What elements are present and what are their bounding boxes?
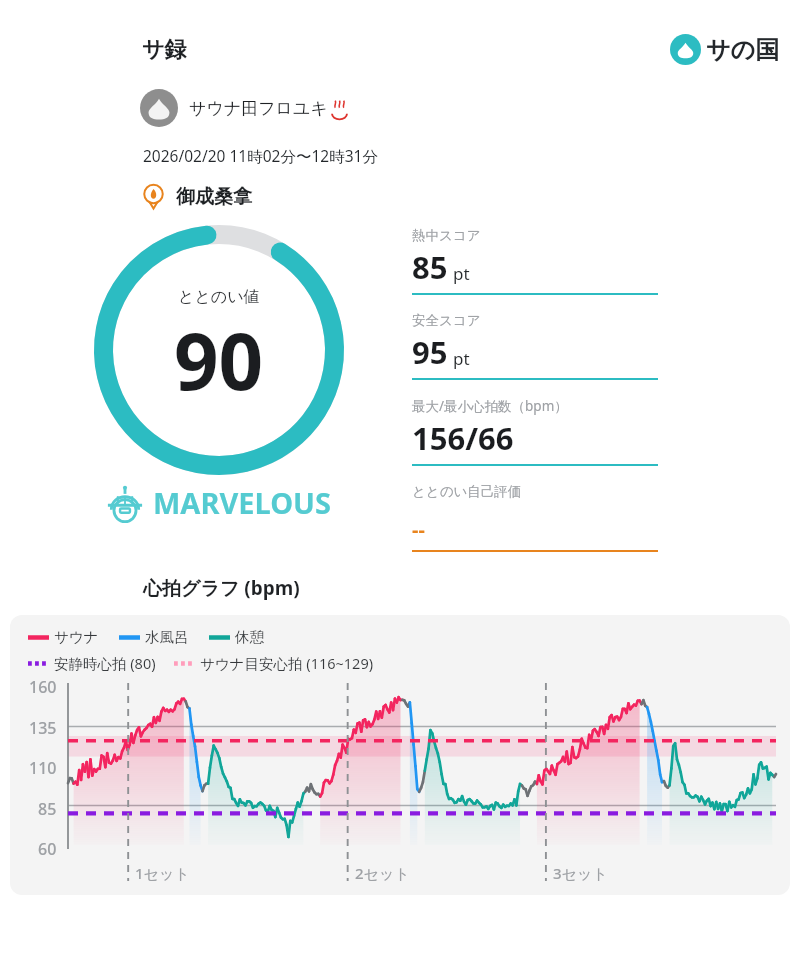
staticText: サの国 [706,35,780,65]
staticText: 熱中スコア [412,227,481,244]
button[interactable]: MARVELOUS [106,483,332,522]
staticText: 最大/最小心拍数（bpm） [412,397,568,415]
staticText: 安全スコア [412,312,481,329]
button[interactable]: サウナ田フロユキ [140,89,348,127]
staticText: サウナ [54,628,99,646]
staticText: ととのい自己評価 [412,483,522,500]
staticText: 安静時心拍 (80) [54,653,156,673]
button[interactable]: ととのい自己評価 [412,483,658,569]
staticText: 156/66 [412,417,514,459]
staticText: -- [412,516,425,543]
staticText: pt [453,347,470,370]
staticText: 2セット [355,863,410,883]
staticText: 135 [29,717,57,739]
button[interactable]: 御成桑拿 [141,184,252,209]
staticText: 60 [38,838,57,860]
staticText: 3セット [553,863,608,883]
staticText: サウナ田フロユキ [189,98,328,119]
staticText: 1セット [135,863,190,883]
button[interactable]: サウナ [10,615,790,895]
button[interactable]: サの国 home [670,34,780,65]
staticText: 85 [412,246,448,288]
staticText: サ録 [142,36,187,64]
staticText: 休憩 [235,628,264,646]
staticText: サウナ目安心拍 (116~129) [200,653,374,673]
staticText: 御成桑拿 [176,185,252,209]
button[interactable]: 熱中スコア [412,227,658,312]
staticText: 2026/02/20 11時02分〜12時31分 [143,145,378,166]
button[interactable]: 安全スコア [412,312,658,397]
staticText: 水風呂 [145,628,189,646]
button[interactable]: 最大/最小心拍数（bpm） [412,397,658,483]
staticText: 160 [29,676,57,698]
staticText: 95 [412,331,448,373]
staticText: 心拍グラフ (bpm) [143,575,300,601]
staticText: 110 [29,757,57,779]
staticText: ととのい値 [178,287,260,307]
staticText: 85 [38,798,57,820]
staticText: MARVELOUS [153,483,332,522]
staticText: 90 [174,307,264,413]
staticText: pt [453,262,470,285]
